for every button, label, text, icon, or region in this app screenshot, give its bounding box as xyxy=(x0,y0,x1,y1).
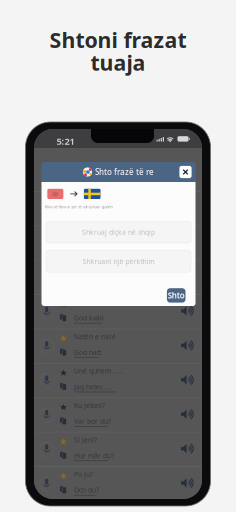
staticText: Jag heter..... xyxy=(74,382,112,391)
staticText: Mirëdita xyxy=(74,263,101,272)
button[interactable]: Close xyxy=(178,162,192,182)
button[interactable]: Shkruaj diçka në shqip xyxy=(46,221,191,243)
staticText: Hej xyxy=(74,176,85,185)
staticText: Unë quhem ..... xyxy=(74,367,123,375)
staticText: Och du? xyxy=(74,486,99,494)
staticText: Natën e mirë xyxy=(74,332,116,341)
button[interactable]: Target language xyxy=(81,187,103,201)
staticText: Mirëmbrëma xyxy=(74,298,116,307)
button[interactable]: Mirëmëngjes xyxy=(34,226,202,261)
button[interactable]: Shkruani një përkthim xyxy=(46,250,191,272)
staticText: Mirëmëngjes xyxy=(74,229,116,238)
staticText: God morgon xyxy=(74,245,114,254)
staticText: Shkruani një përkthim xyxy=(82,257,154,266)
button[interactable]: Ku jetoni? xyxy=(34,398,202,433)
button[interactable]: Natën e mirë xyxy=(34,329,202,364)
staticText: Shkruaj diçka në shqip xyxy=(82,228,155,237)
button[interactable]: Mirëmbrëma xyxy=(34,295,202,329)
button[interactable]: Tungjatjeta xyxy=(34,192,202,226)
staticText: Përshëndetje xyxy=(74,160,116,169)
staticText: Shto frazë të re xyxy=(95,167,154,177)
button[interactable]: Source language xyxy=(44,187,66,201)
staticText: God natt xyxy=(74,348,101,357)
button[interactable]: Mirëdita xyxy=(34,261,202,295)
staticText: God kväll xyxy=(74,314,104,322)
staticText: Tungjatjeta xyxy=(74,195,109,203)
button[interactable]: Shto xyxy=(167,288,185,303)
staticText: Hur mår du? xyxy=(74,451,114,460)
staticText: Var bor du? xyxy=(74,417,111,426)
staticText: 5:21 xyxy=(56,135,74,147)
button[interactable]: Si jeni? xyxy=(34,433,202,467)
staticText: Ku jetoni? xyxy=(74,401,105,410)
staticText: Kliko në flamur për të ndryshuar gjuhën xyxy=(44,204,112,209)
button[interactable]: Po ju? xyxy=(34,467,202,501)
staticText: Shtoni frazat xyxy=(49,25,186,54)
button[interactable]: Përshëndetje xyxy=(34,157,202,192)
staticText: Shto xyxy=(168,290,185,301)
button[interactable]: Unë quhem ..... xyxy=(34,364,202,398)
staticText: Po ju? xyxy=(74,470,93,479)
staticText: Si jeni? xyxy=(74,435,97,444)
staticText: tuaja xyxy=(90,48,145,77)
